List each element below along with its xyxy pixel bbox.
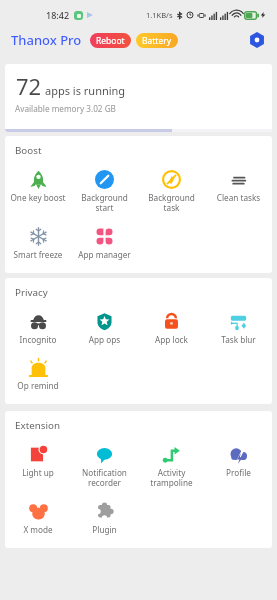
staticText: One key boost (6, 192, 70, 203)
button[interactable]: Reboot (90, 33, 131, 48)
button[interactable]: App ops (71, 312, 138, 345)
staticText: Incognito (6, 334, 70, 345)
button[interactable]: Incognito (5, 312, 71, 345)
button[interactable]: Settings (245, 28, 269, 52)
staticText: App ops (72, 334, 137, 345)
staticText: Background start (72, 192, 137, 214)
button[interactable]: X mode (5, 502, 71, 535)
button[interactable]: App lock (138, 312, 205, 345)
button[interactable]: Clean tasks (205, 170, 272, 203)
button[interactable]: Activity trampoline (138, 445, 205, 489)
staticText: Notification recorder (72, 467, 137, 489)
staticText: Clean tasks (206, 192, 271, 203)
button[interactable]: Plugin (71, 502, 138, 535)
button[interactable]: Op remind (5, 358, 71, 391)
button[interactable]: App manager (71, 227, 138, 260)
button[interactable]: Smart freeze (5, 227, 71, 260)
staticText: Profile (206, 467, 271, 478)
staticText: Available memory 3.02 GB (15, 103, 116, 114)
button[interactable]: Profile (205, 445, 272, 478)
staticText: Background task (139, 192, 204, 214)
staticText: App manager (72, 249, 137, 260)
staticText: 72 (16, 71, 42, 101)
staticText: Extension (15, 419, 60, 432)
staticText: Op remind (6, 380, 70, 391)
staticText: Thanox Pro (11, 31, 82, 49)
button[interactable]: 72 (5, 64, 272, 132)
staticText: Reboot (96, 35, 125, 47)
staticText: Privacy (15, 286, 48, 299)
staticText: Task blur (206, 334, 271, 345)
staticText: 1.1KB/s (146, 10, 173, 20)
button[interactable]: Background task (138, 170, 205, 214)
staticText: Light up (6, 467, 70, 478)
button[interactable]: Task blur (205, 312, 272, 345)
button[interactable]: One key boost (5, 170, 71, 203)
staticText: Plugin (72, 524, 137, 535)
staticText: Battery (142, 35, 172, 47)
button[interactable]: Notification recorder (71, 445, 138, 489)
staticText: Activity trampoline (139, 467, 204, 489)
staticText: Boost (15, 144, 42, 157)
staticText: apps is running (45, 83, 126, 98)
staticText: 18:42 (46, 9, 70, 21)
button[interactable]: Light up (5, 445, 71, 478)
button[interactable]: Background start (71, 170, 138, 214)
button[interactable]: Battery (136, 33, 178, 48)
staticText: App lock (139, 334, 204, 345)
staticText: X mode (6, 524, 70, 535)
staticText: Smart freeze (6, 249, 70, 260)
